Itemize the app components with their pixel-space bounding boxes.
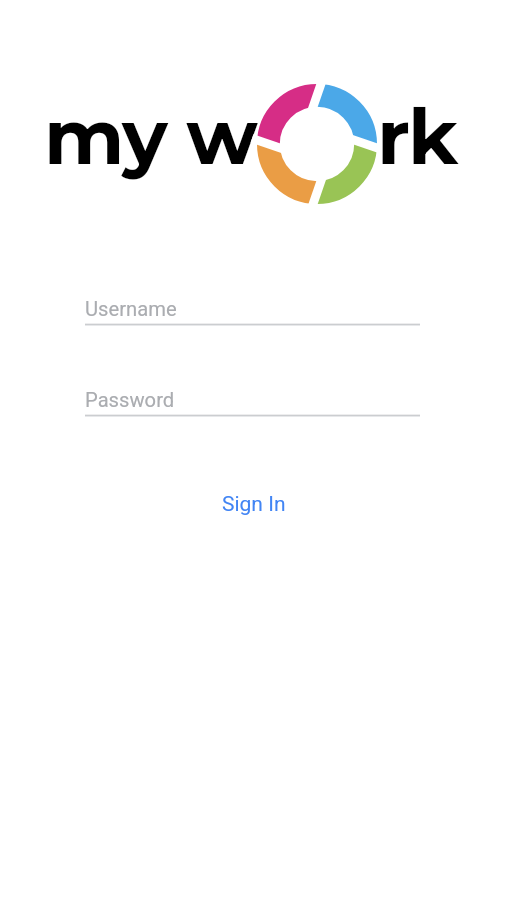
button[interactable]: Username [85,297,420,326]
button[interactable]: Password [85,388,420,417]
staticText: Password [85,388,175,412]
button[interactable]: Sign In [0,482,507,526]
staticText: my w [44,90,257,183]
staticText: rk [377,90,457,183]
staticText: Username [85,297,177,321]
staticText: Sign In [222,492,286,517]
